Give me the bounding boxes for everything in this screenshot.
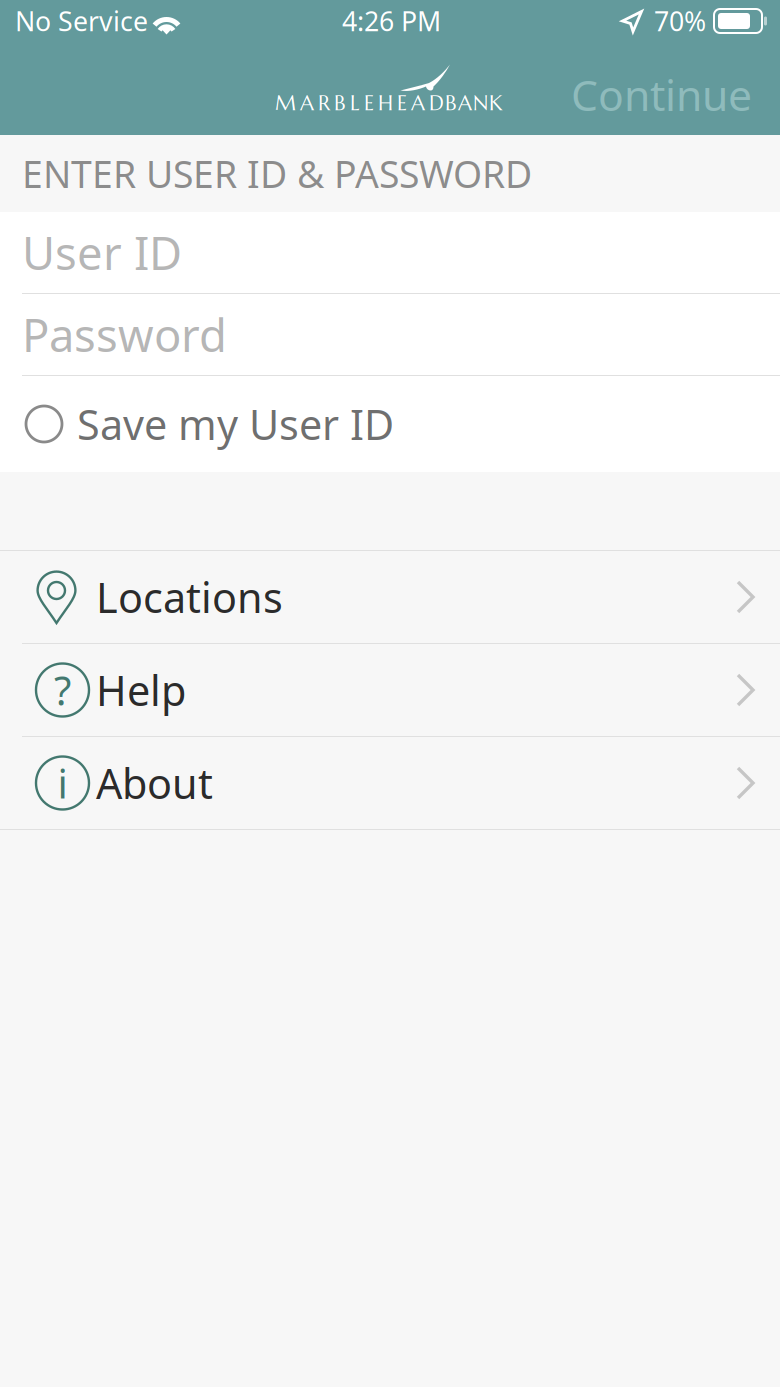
staticText: ? bbox=[54, 663, 71, 717]
staticText: User ID bbox=[22, 222, 182, 283]
staticText: 4:26 PM bbox=[342, 3, 441, 39]
button[interactable]: Locations bbox=[0, 551, 780, 643]
staticText: 70% bbox=[654, 3, 706, 39]
button[interactable]: Continue bbox=[571, 66, 780, 123]
button[interactable]: Save my User ID bbox=[0, 376, 780, 472]
staticText: Save my User ID bbox=[77, 397, 394, 451]
staticText: Continue bbox=[571, 66, 752, 123]
staticText: Help bbox=[96, 663, 186, 717]
staticText: i bbox=[57, 756, 67, 810]
button[interactable]: ? bbox=[0, 644, 780, 736]
staticText: Password bbox=[22, 304, 227, 365]
staticText: M A R B L E H E A D B A N K bbox=[275, 90, 502, 116]
button[interactable]: i bbox=[0, 737, 780, 829]
staticText: No Service bbox=[15, 3, 148, 39]
staticText: Locations bbox=[96, 570, 283, 624]
staticText: About bbox=[96, 756, 213, 810]
staticText: ENTER USER ID & PASSWORD bbox=[22, 149, 532, 198]
